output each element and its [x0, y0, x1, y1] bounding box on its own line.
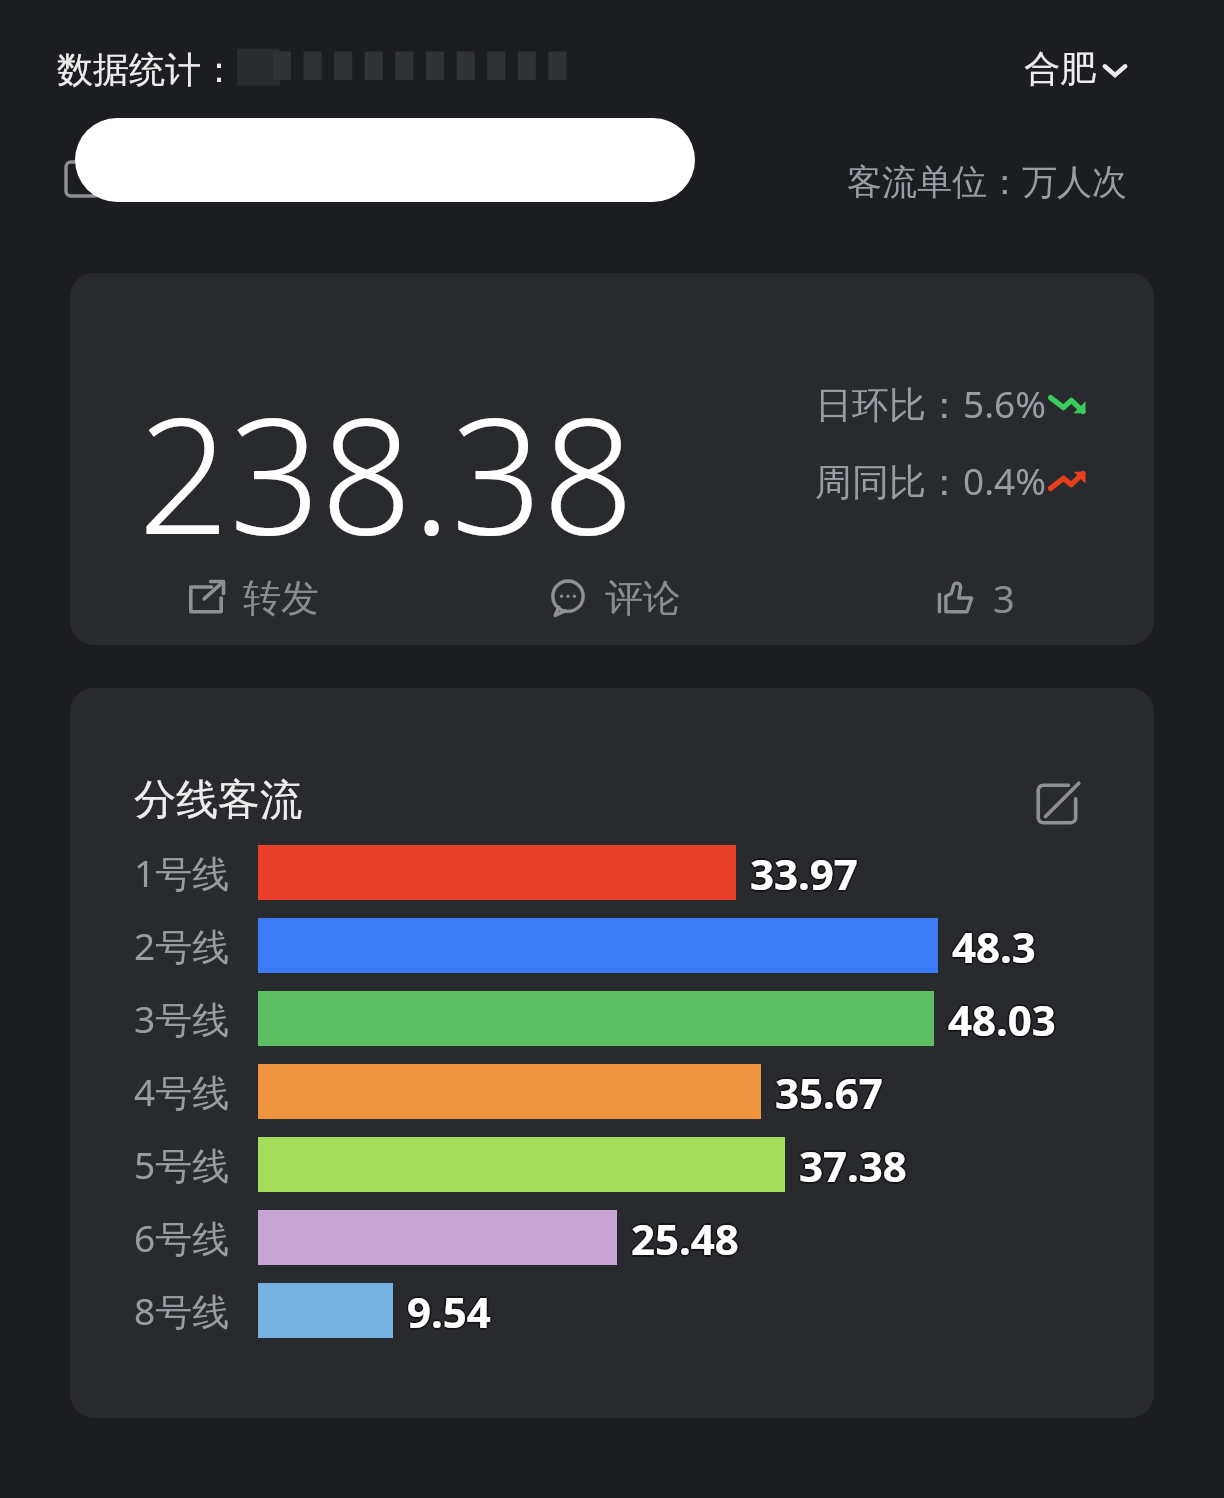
staticText: 合肥: [1024, 46, 1096, 91]
staticText: 48.03: [948, 989, 1056, 1044]
staticText: 评论: [605, 574, 681, 622]
staticText: 25.48: [629, 1210, 737, 1265]
staticText: 33.97: [752, 845, 860, 900]
staticText: 9.54: [405, 1283, 489, 1338]
staticText: 9.54: [407, 1281, 491, 1336]
staticText: 25.48: [631, 1208, 739, 1263]
staticText: 25.48: [631, 1210, 739, 1265]
staticText: 转发: [243, 574, 319, 622]
staticText: 9.54: [407, 1285, 491, 1340]
button[interactable]: 3: [793, 560, 1154, 636]
staticText: 4号线: [134, 1066, 230, 1117]
staticText: 35.67: [775, 1066, 883, 1121]
staticText: 48.03: [948, 991, 1056, 1046]
staticText: 48.3: [952, 918, 1036, 973]
staticText: 33.97: [750, 847, 858, 902]
staticText: 48.3: [954, 918, 1038, 973]
staticText: 客流单位：万人次: [847, 160, 1127, 204]
button[interactable]: 合肥: [1024, 46, 1130, 91]
staticText: 3号线: [134, 993, 230, 1044]
staticText: 1号线: [134, 847, 230, 898]
staticText: 37.38: [799, 1137, 907, 1192]
button[interactable]: 238.38: [70, 273, 1154, 645]
staticText: 48.03: [948, 993, 1056, 1048]
staticText: 35.67: [775, 1064, 883, 1119]
staticText: 3: [993, 572, 1015, 624]
button[interactable]: 5号线: [70, 1137, 1154, 1192]
button[interactable]: 1号线: [70, 845, 1154, 900]
button[interactable]: 转发: [70, 560, 432, 636]
staticText: 35.67: [775, 1062, 883, 1117]
button[interactable]: 6号线: [70, 1210, 1154, 1265]
staticText: 2号线: [134, 920, 230, 971]
button[interactable]: 评论: [432, 560, 793, 636]
staticText: 数据统计：: [57, 47, 237, 92]
staticText: 37.38: [801, 1137, 909, 1192]
button[interactable]: 4号线: [70, 1064, 1154, 1119]
staticText: 33.97: [748, 845, 856, 900]
button[interactable]: 3号线: [70, 991, 1154, 1046]
staticText: 37.38: [799, 1139, 907, 1194]
staticText: 分线客流: [134, 774, 302, 827]
staticText: 37.38: [797, 1137, 905, 1192]
staticText: 48.3: [950, 918, 1034, 973]
staticText: 6号线: [134, 1212, 230, 1263]
button[interactable]: 2号线: [70, 918, 1154, 973]
staticText: 48.3: [952, 920, 1036, 975]
staticText: 8号线: [134, 1285, 230, 1336]
staticText: 日环比：5.6%: [815, 378, 1046, 429]
staticText: 周同比：0.4%: [815, 455, 1046, 506]
staticText: 9.54: [409, 1283, 493, 1338]
staticText: 25.48: [633, 1210, 741, 1265]
staticText: 35.67: [777, 1064, 885, 1119]
staticText: 9.54: [407, 1283, 491, 1338]
staticText: 5号线: [134, 1139, 230, 1190]
staticText: 48.03: [946, 991, 1054, 1046]
button[interactable]: 8号线: [70, 1283, 1154, 1338]
staticText: 33.97: [750, 843, 858, 898]
staticText: 48.3: [952, 916, 1036, 971]
staticText: 48.03: [950, 991, 1058, 1046]
staticText: 35.67: [773, 1064, 881, 1119]
staticText: 37.38: [799, 1135, 907, 1190]
button[interactable]: Edit: [1030, 776, 1086, 832]
staticText: 25.48: [631, 1212, 739, 1267]
staticText: 238.38: [138, 363, 634, 581]
staticText: 33.97: [750, 845, 858, 900]
